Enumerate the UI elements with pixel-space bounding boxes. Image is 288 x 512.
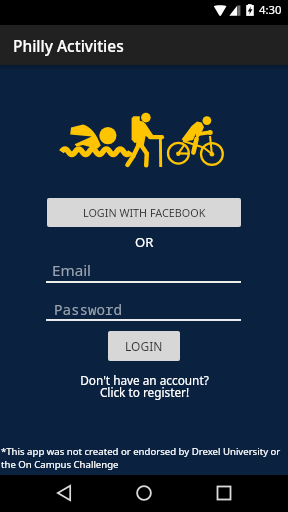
- button[interactable]: Back: [44, 473, 84, 512]
- staticText: Philly Activities: [13, 35, 124, 56]
- button[interactable]: Recents: [204, 473, 244, 512]
- button[interactable]: Don't have an account? Click to register…: [0, 372, 288, 400]
- staticText: Don't have an account? Click to register…: [80, 372, 209, 400]
- button[interactable]: LOGIN: [108, 331, 180, 361]
- button[interactable]: Home: [124, 473, 164, 512]
- staticText: LOGIN: [125, 338, 163, 354]
- staticText: LOGIN WITH FACEBOOK: [83, 205, 206, 220]
- staticText: Email: [52, 260, 92, 281]
- staticText: *This app was not created or endorsed by…: [1, 445, 287, 471]
- staticText: 4:30: [259, 2, 282, 17]
- staticText: Password: [54, 300, 123, 319]
- button[interactable]: LOGIN WITH FACEBOOK: [47, 198, 241, 227]
- staticText: OR: [135, 233, 154, 251]
